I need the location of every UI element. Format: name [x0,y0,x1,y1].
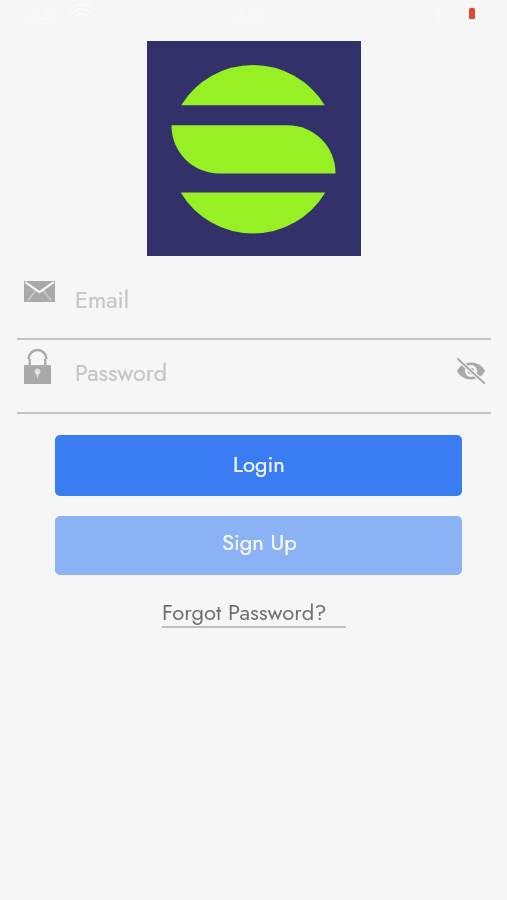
button[interactable]: Show password [453,355,489,387]
staticText: Forgot Password? [162,596,327,628]
button[interactable]: Forgot Password? [160,595,348,633]
button[interactable]: Login [55,435,462,496]
staticText: Email [75,283,130,317]
staticText: Password [75,356,168,390]
staticText: Sign Up [222,526,297,558]
button[interactable] [0,356,507,412]
button[interactable]: Sign Up [55,516,462,575]
button[interactable] [0,282,507,338]
staticText: Login [233,448,285,480]
